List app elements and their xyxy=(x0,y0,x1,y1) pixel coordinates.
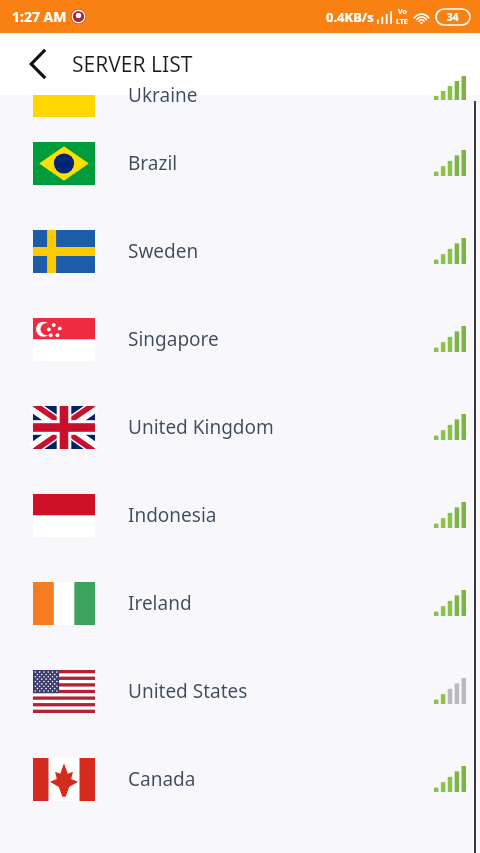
button[interactable]: Sweden xyxy=(0,207,480,295)
button[interactable]: Canada xyxy=(0,735,480,823)
staticText: Brazil xyxy=(128,150,178,176)
staticText: 0.4KB/s xyxy=(326,8,374,26)
button[interactable]: Singapore xyxy=(0,295,480,383)
button[interactable]: Back xyxy=(16,42,60,86)
staticText: Ireland xyxy=(128,590,192,616)
staticText: Sweden xyxy=(128,238,199,264)
staticText: Singapore xyxy=(128,326,219,352)
staticText: LTE xyxy=(396,17,408,27)
staticText: SERVER LIST xyxy=(72,50,193,79)
staticText: Indonesia xyxy=(128,502,217,528)
staticText: Canada xyxy=(128,766,196,792)
button[interactable]: Ukraine xyxy=(0,95,480,119)
staticText: Vo xyxy=(398,7,407,17)
button[interactable]: Brazil xyxy=(0,119,480,207)
button[interactable]: Ireland xyxy=(0,559,480,647)
button[interactable]: United States xyxy=(0,647,480,735)
staticText: United States xyxy=(128,678,248,704)
staticText: United Kingdom xyxy=(128,414,274,440)
button[interactable]: Indonesia xyxy=(0,471,480,559)
staticText: 1:27 AM xyxy=(12,7,67,26)
staticText: 34 xyxy=(447,10,459,24)
staticText: Ukraine xyxy=(128,82,198,106)
button[interactable]: United Kingdom xyxy=(0,383,480,471)
